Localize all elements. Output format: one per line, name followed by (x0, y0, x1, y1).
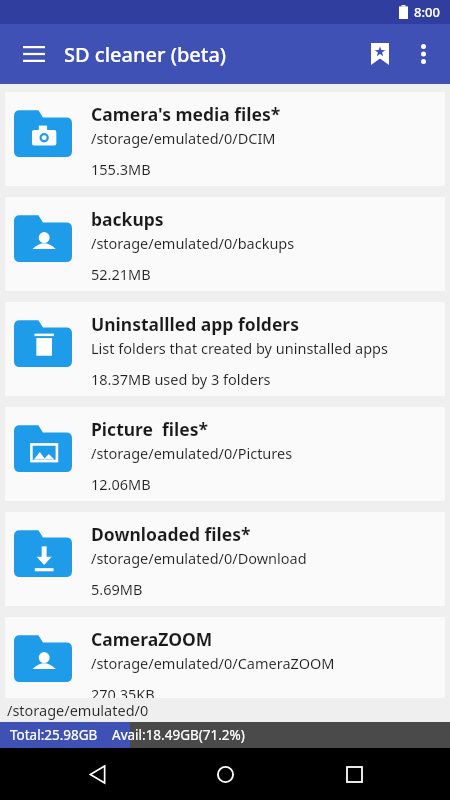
staticText: 12.06MB (91, 474, 151, 494)
staticText: 8:00 (414, 3, 440, 21)
button[interactable]: Bookmarks (358, 32, 402, 76)
button[interactable]: Back (65, 748, 129, 800)
button[interactable]: Downloaded files* (5, 512, 445, 606)
staticText: Camera's media files* (91, 102, 281, 126)
staticText: /storage/emulated/0/DCIM (91, 128, 276, 148)
button[interactable]: Total:25.98GB (0, 722, 450, 748)
button[interactable]: backups (5, 197, 445, 291)
button[interactable]: /storage/emulated/0 (0, 698, 450, 722)
staticText: 52.21MB (91, 264, 151, 284)
staticText: /storage/emulated/0/backups (91, 233, 295, 253)
staticText: Uninstallled app folders (91, 312, 299, 336)
staticText: /storage/emulated/0 (7, 700, 149, 720)
button[interactable]: Camera's media files* (5, 92, 445, 186)
staticText: /storage/emulated/0/Pictures (91, 443, 293, 463)
staticText: Total:25.98GB (10, 726, 98, 744)
button[interactable]: More options (402, 33, 444, 75)
staticText: 155.3MB (91, 159, 151, 179)
staticText: 270.35KB (91, 684, 155, 698)
staticText: 5.69MB (91, 579, 143, 599)
staticText: backups (91, 207, 164, 231)
staticText: CameraZOOM (91, 627, 213, 651)
staticText: Picture files* (91, 417, 209, 441)
staticText: List folders that created by uninstalled… (91, 338, 388, 358)
button[interactable]: Picture files* (5, 407, 445, 501)
staticText: Downloaded files* (91, 522, 251, 546)
button[interactable]: CameraZOOM (5, 617, 445, 698)
button[interactable]: Home (193, 748, 257, 800)
staticText: SD cleaner (beta) (64, 41, 227, 68)
button[interactable]: Open navigation menu (14, 34, 54, 74)
staticText: Avail:18.49GB(71.2%) (112, 726, 245, 744)
button[interactable]: Recent apps (322, 748, 386, 800)
staticText: /storage/emulated/0/Download (91, 548, 307, 568)
staticText: 18.37MB used by 3 folders (91, 369, 271, 389)
staticText: /storage/emulated/0/CameraZOOM (91, 653, 335, 673)
button[interactable]: Uninstallled app folders (5, 302, 445, 396)
